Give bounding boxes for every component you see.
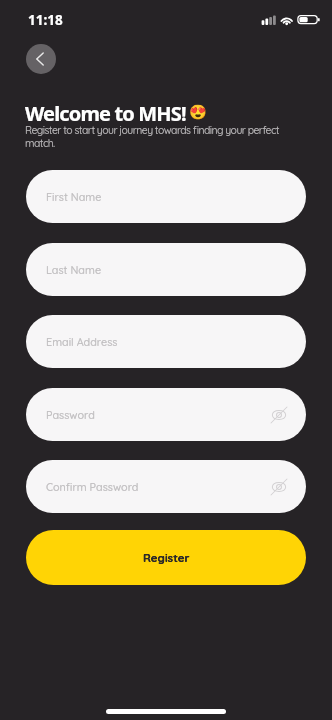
staticText: First Name bbox=[46, 190, 102, 204]
button[interactable]: Show password bbox=[263, 471, 295, 503]
button[interactable]: Password bbox=[26, 388, 306, 441]
staticText: Email Address bbox=[46, 335, 118, 349]
button[interactable]: Register bbox=[26, 530, 306, 585]
staticText: Welcome to MHS! bbox=[25, 100, 186, 127]
button[interactable]: Back bbox=[26, 44, 56, 74]
staticText: Register bbox=[143, 550, 190, 564]
button[interactable]: Email Address bbox=[26, 315, 306, 368]
staticText: Last Name bbox=[46, 263, 102, 277]
staticText: Password bbox=[46, 408, 95, 422]
button[interactable]: Confirm Password bbox=[26, 460, 306, 513]
staticText: Register bbox=[143, 550, 190, 564]
button[interactable]: Last Name bbox=[26, 243, 306, 296]
button[interactable]: Show password bbox=[263, 399, 295, 431]
staticText: Register to start your journey towards f… bbox=[25, 124, 279, 150]
staticText: Confirm Password bbox=[46, 480, 139, 494]
staticText: Register bbox=[143, 550, 190, 564]
button[interactable]: First Name bbox=[26, 170, 306, 223]
staticText: 11:18 bbox=[28, 11, 63, 29]
staticText: 😍 bbox=[189, 104, 204, 121]
